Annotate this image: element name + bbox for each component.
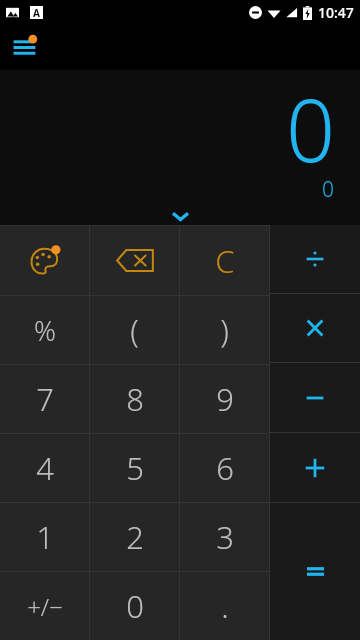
button[interactable]: ) [180, 296, 269, 364]
button[interactable]: 6 [180, 434, 269, 502]
staticText: 10:47 [318, 3, 354, 22]
staticText: A [33, 6, 40, 19]
staticText: 5 [126, 447, 144, 489]
button[interactable]: ( [90, 296, 179, 364]
button[interactable]: Color theme [0, 226, 89, 295]
button[interactable]: Show history [158, 207, 202, 225]
button[interactable]: C [180, 226, 269, 295]
staticText: 6 [216, 447, 234, 489]
staticText: +/− [27, 590, 63, 623]
staticText: ( [130, 309, 139, 351]
button[interactable]: 8 [90, 365, 179, 433]
button[interactable]: 9 [180, 365, 269, 433]
staticText: 8 [126, 378, 144, 420]
staticText: 1 [36, 516, 54, 558]
staticText: 0 [322, 175, 334, 204]
staticText: 0 [126, 585, 144, 627]
staticText: ) [220, 309, 229, 351]
staticText: 3 [216, 516, 234, 558]
button[interactable]: 1 [0, 503, 89, 571]
staticText: 0 [286, 70, 336, 187]
staticText: 9 [216, 378, 234, 420]
button[interactable]: Multiply [270, 294, 360, 362]
button[interactable]: Equals [270, 503, 360, 640]
staticText: % [34, 312, 56, 349]
staticText: 7 [36, 378, 54, 420]
button[interactable]: 3 [180, 503, 269, 571]
button[interactable]: Backspace [90, 226, 179, 295]
button[interactable]: Menu [6, 28, 44, 66]
button[interactable]: +/− [0, 572, 89, 640]
button[interactable]: Add [270, 433, 360, 502]
button[interactable]: 0 [90, 572, 179, 640]
button[interactable]: 7 [0, 365, 89, 433]
button[interactable]: . [180, 572, 269, 640]
staticText: 2 [126, 516, 144, 558]
button[interactable]: % [0, 296, 89, 364]
staticText: C [215, 240, 235, 282]
button[interactable]: 4 [0, 434, 89, 502]
staticText: 4 [36, 447, 54, 489]
button[interactable]: Divide [270, 225, 360, 293]
button[interactable]: Subtract [270, 363, 360, 432]
staticText: . [221, 585, 229, 627]
button[interactable]: 2 [90, 503, 179, 571]
button[interactable]: 5 [90, 434, 179, 502]
